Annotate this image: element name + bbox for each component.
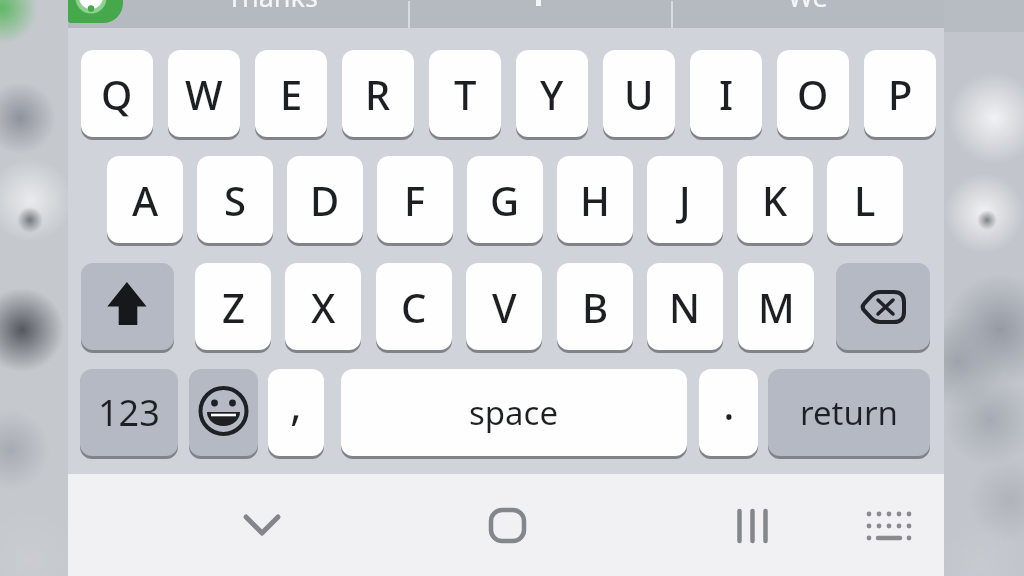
staticText: W: [185, 67, 223, 121]
button[interactable]: N: [647, 263, 723, 350]
button[interactable]: [189, 369, 258, 456]
staticText: X: [311, 280, 336, 334]
staticText: E: [280, 67, 303, 121]
staticText: ,: [290, 373, 302, 433]
button[interactable]: U: [603, 50, 675, 137]
button[interactable]: [81, 263, 174, 350]
staticText: B: [582, 280, 609, 334]
staticText: Y: [540, 67, 564, 121]
button[interactable]: ,: [268, 369, 324, 456]
button[interactable]: F: [377, 156, 453, 243]
staticText: T: [454, 67, 477, 121]
button[interactable]: J: [647, 156, 723, 243]
button[interactable]: H: [557, 156, 633, 243]
button[interactable]: G: [467, 156, 543, 243]
button[interactable]: Y: [516, 50, 588, 137]
button[interactable]: [858, 500, 920, 550]
staticText: return: [800, 390, 898, 435]
button[interactable]: return: [768, 369, 930, 456]
button[interactable]: K: [737, 156, 813, 243]
staticText: R: [365, 67, 391, 121]
staticText: Z: [222, 280, 245, 334]
button[interactable]: [232, 500, 292, 550]
button[interactable]: C: [376, 263, 452, 350]
staticText: D: [310, 173, 340, 227]
button[interactable]: [68, 0, 944, 28]
staticText: space: [469, 390, 559, 435]
button[interactable]: Z: [195, 263, 271, 350]
staticText: Thanks: [227, 0, 318, 15]
button[interactable]: W: [168, 50, 240, 137]
button[interactable]: 123: [80, 369, 178, 456]
staticText: U: [624, 67, 654, 121]
button[interactable]: S: [197, 156, 273, 243]
staticText: V: [492, 280, 517, 334]
staticText: H: [580, 173, 610, 227]
staticText: G: [490, 173, 520, 227]
staticText: Q: [101, 67, 133, 121]
button[interactable]: A: [107, 156, 183, 243]
button[interactable]: [722, 498, 782, 554]
staticText: O: [797, 67, 829, 121]
button[interactable]: [836, 263, 930, 350]
staticText: C: [401, 280, 427, 334]
staticText: P: [888, 67, 913, 121]
staticText: 123: [98, 388, 160, 437]
button[interactable]: R: [342, 50, 414, 137]
button[interactable]: D: [287, 156, 363, 243]
staticText: .: [723, 373, 735, 433]
button[interactable]: L: [827, 156, 903, 243]
button[interactable]: M: [738, 263, 814, 350]
button[interactable]: T: [429, 50, 501, 137]
staticText: M: [758, 280, 795, 334]
button[interactable]: V: [466, 263, 542, 350]
button[interactable]: P: [864, 50, 936, 137]
staticText: N: [669, 280, 701, 334]
staticText: We: [788, 0, 828, 15]
button[interactable]: .: [699, 369, 758, 456]
button[interactable]: E: [255, 50, 327, 137]
staticText: A: [132, 173, 159, 227]
staticText: S: [224, 173, 246, 227]
staticText: I: [719, 67, 734, 121]
button[interactable]: Q: [81, 50, 153, 137]
staticText: J: [679, 173, 691, 227]
staticText: L: [854, 173, 876, 227]
button[interactable]: O: [777, 50, 849, 137]
button[interactable]: [478, 498, 538, 554]
staticText: K: [762, 173, 788, 227]
button[interactable]: B: [557, 263, 633, 350]
button[interactable]: I: [690, 50, 762, 137]
button[interactable]: space: [341, 369, 687, 456]
button[interactable]: X: [285, 263, 361, 350]
staticText: F: [404, 173, 426, 227]
